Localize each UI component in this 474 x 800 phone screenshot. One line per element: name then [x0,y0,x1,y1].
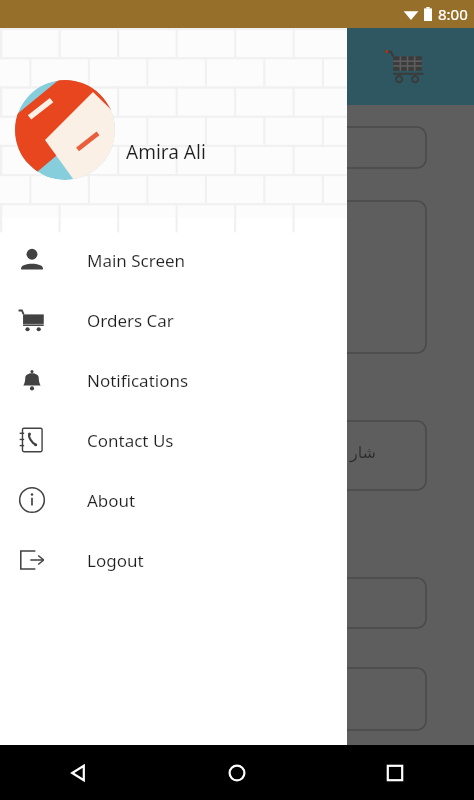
staticText: Main Screen [87,249,186,272]
button[interactable]: About [0,470,347,530]
button[interactable]: Back [0,745,158,800]
button[interactable]: Recent apps [316,745,474,800]
button[interactable]: Shopping cart [384,48,426,86]
staticText: Contact Us [87,429,174,452]
button[interactable]: Main Screen [0,230,347,290]
staticText: Logout [87,549,144,572]
staticText: Amira Ali [126,139,206,165]
staticText: Notifications [87,369,189,392]
staticText: Orders Car [87,309,174,332]
button[interactable]: Orders Car [0,290,347,350]
button[interactable]: Notifications [0,350,347,410]
button[interactable]: Contact Us [0,410,347,470]
staticText: About [87,489,136,512]
button[interactable]: Profile picture [15,80,115,180]
button[interactable]: Logout [0,530,347,590]
staticText: 8:00 [438,4,468,24]
button[interactable]: Home [158,745,316,800]
staticText: شار [350,443,377,462]
